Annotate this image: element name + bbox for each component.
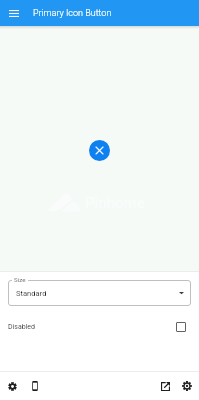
staticText: Disabled bbox=[8, 323, 36, 331]
button[interactable]: Disabled bbox=[0, 317, 199, 337]
button[interactable]: Settings menu bbox=[177, 376, 197, 396]
staticText: Primary Icon Button bbox=[33, 8, 112, 19]
button[interactable]: Close bbox=[89, 140, 110, 161]
staticText: Standard bbox=[16, 289, 47, 298]
button[interactable]: Menu bbox=[4, 4, 23, 23]
button[interactable]: Standard bbox=[8, 280, 191, 306]
staticText: Size bbox=[14, 276, 26, 283]
button[interactable]: Device preview bbox=[25, 376, 45, 396]
button[interactable]: Settings bbox=[2, 376, 22, 396]
button[interactable]: Open in new bbox=[155, 376, 175, 396]
